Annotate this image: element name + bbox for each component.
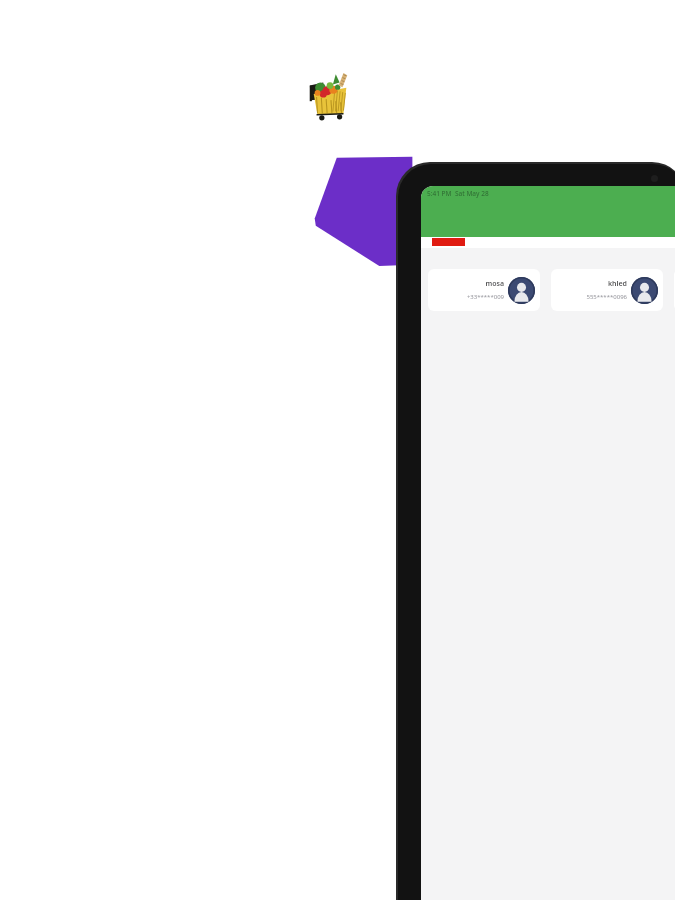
button[interactable]: mosa — [428, 269, 540, 311]
button[interactable]: ahmed — [674, 269, 675, 311]
staticText: 5:41 PM Sat May 28 — [427, 189, 489, 198]
staticText: khled — [607, 279, 627, 289]
staticText: 555*****0096 — [586, 293, 627, 301]
other: Contact avatar — [631, 277, 658, 304]
staticText: +33*****009 — [466, 293, 504, 301]
staticText: mosa — [485, 279, 504, 289]
other: Contact avatar — [508, 277, 535, 304]
button[interactable]: khled — [551, 269, 663, 311]
other: Shopping cart — [306, 70, 354, 122]
